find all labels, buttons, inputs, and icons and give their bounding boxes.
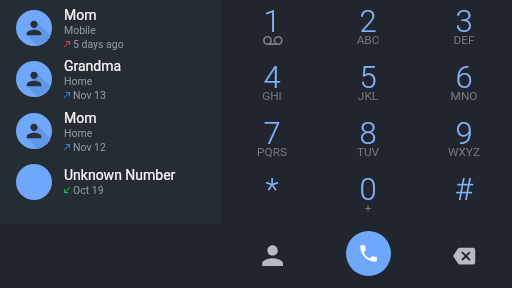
staticText: 2 (320, 3, 416, 39)
staticText: Mobile (64, 24, 96, 36)
staticText: DEF (416, 33, 512, 47)
button[interactable]: Backspace (416, 224, 512, 288)
staticText: Oct 19 (73, 184, 104, 196)
button[interactable]: 0 (320, 168, 416, 224)
button[interactable]: 6 (416, 56, 512, 112)
staticText: 3 (416, 3, 512, 39)
button[interactable]: 7 (224, 112, 320, 168)
staticText: MNO (416, 89, 512, 103)
staticText: 4 (224, 59, 320, 95)
button[interactable]: Unknown Number (0, 156, 222, 207)
staticText: 5 (320, 59, 416, 95)
other: Voicemail (263, 31, 283, 47)
button[interactable]: * (224, 168, 320, 224)
staticText: 8 (320, 115, 416, 151)
button[interactable]: Mom (0, 105, 222, 156)
staticText: Nov 13 (73, 89, 106, 101)
button[interactable]: 8 (320, 112, 416, 168)
staticText: Home (64, 75, 93, 87)
staticText: Nov 12 (73, 141, 106, 153)
button[interactable]: 4 (224, 56, 320, 112)
button[interactable]: # (416, 168, 512, 224)
button[interactable]: 3 (416, 0, 512, 56)
staticText: Grandma (64, 58, 122, 74)
staticText: Home (64, 127, 93, 139)
staticText: 7 (224, 115, 320, 151)
button[interactable]: 5 (320, 56, 416, 112)
staticText: JKL (320, 89, 416, 103)
button[interactable]: 2 (320, 0, 416, 56)
button[interactable]: Grandma (0, 53, 222, 104)
staticText: GHI (224, 89, 320, 103)
staticText: WXYZ (416, 145, 512, 159)
button[interactable]: Contacts (224, 224, 320, 288)
staticText: TUV (320, 145, 416, 159)
staticText: Mom (64, 7, 97, 23)
staticText: + (320, 201, 416, 215)
staticText: 9 (416, 115, 512, 151)
staticText: * (224, 171, 320, 207)
staticText: 1 (224, 3, 320, 39)
staticText: 0 (320, 171, 416, 207)
staticText: 6 (416, 59, 512, 95)
button[interactable]: Mom (0, 2, 222, 53)
button[interactable]: 1 (224, 0, 320, 56)
staticText: Unknown Number (64, 167, 176, 183)
staticText: PQRS (224, 145, 320, 159)
staticText: 5 days ago (73, 38, 124, 50)
button[interactable]: 9 (416, 112, 512, 168)
button[interactable]: Call (346, 231, 391, 276)
staticText: Mom (64, 110, 97, 126)
staticText: ABC (320, 33, 416, 47)
staticText: # (416, 171, 512, 207)
